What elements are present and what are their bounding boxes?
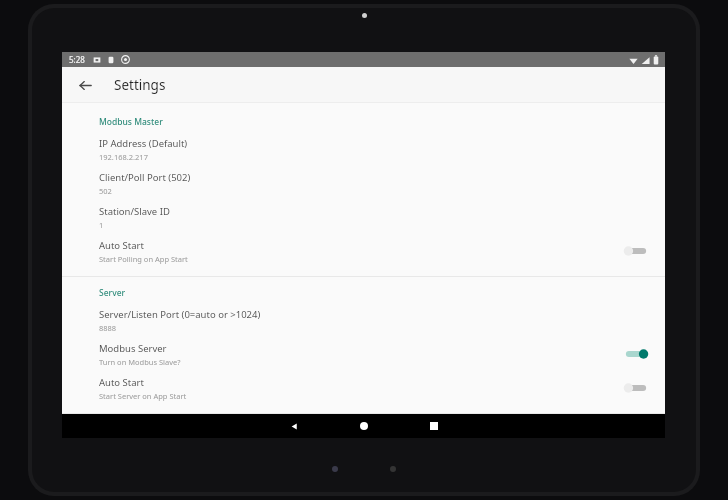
staticText: Station/Slave ID	[99, 205, 170, 218]
staticText: Auto Start	[99, 376, 144, 389]
staticText: Server/Listen Port (0=auto or >1024)	[99, 308, 261, 321]
button[interactable]: Server/Listen Port (0=auto or >1024)	[62, 303, 665, 337]
staticText: Modbus Server	[99, 342, 167, 355]
button[interactable]: Toggle on	[623, 344, 649, 364]
staticText: 5:28	[69, 54, 85, 65]
button[interactable]: Home	[353, 415, 375, 437]
button[interactable]: Auto Start	[62, 234, 665, 268]
button[interactable]: Station/Slave ID	[62, 200, 665, 234]
staticText: Auto Start	[99, 239, 144, 252]
staticText: Turn on Modbus Slave?	[99, 357, 181, 367]
button[interactable]: Toggle off	[623, 378, 649, 398]
staticText: 8888	[99, 323, 117, 333]
button[interactable]: Modbus Server	[62, 337, 665, 371]
button[interactable]: Recent apps	[423, 415, 445, 437]
staticText: Start Server on App Start	[99, 391, 187, 401]
button[interactable]: Auto Start	[62, 371, 665, 405]
staticText: Settings	[114, 76, 166, 94]
button[interactable]: IP Address (Default)	[62, 132, 665, 166]
button[interactable]: Client/Poll Port (502)	[62, 166, 665, 200]
button[interactable]: Toggle off	[623, 241, 649, 261]
staticText: Modbus Master	[99, 116, 163, 128]
staticText: Start Polling on App Start	[99, 254, 188, 264]
staticText: IP Address (Default)	[99, 137, 188, 150]
staticText: Server	[99, 287, 126, 299]
button[interactable]: Back	[70, 70, 100, 100]
button[interactable]: Back	[283, 415, 305, 437]
staticText: 192.168.2.217	[99, 152, 148, 162]
staticText: 1	[99, 220, 104, 230]
staticText: 502	[99, 186, 112, 196]
staticText: Client/Poll Port (502)	[99, 171, 191, 184]
